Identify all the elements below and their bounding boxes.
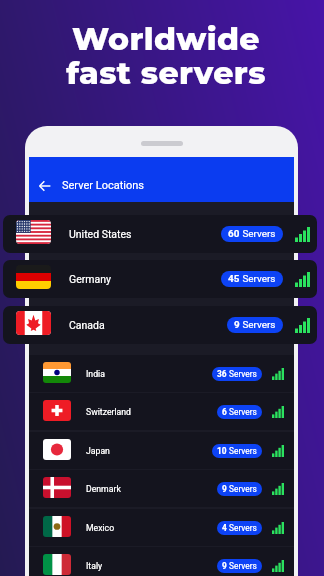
button[interactable]: 36 [212, 367, 262, 381]
staticText: Servers [240, 319, 276, 331]
staticText: Denmark [86, 484, 121, 494]
staticText: 45 [228, 273, 240, 285]
staticText: 9 [234, 319, 240, 331]
staticText: Servers [227, 407, 257, 417]
button[interactable]: Back [34, 175, 56, 197]
button[interactable]: Italy [29, 547, 294, 576]
staticText: Germany [69, 273, 111, 285]
button[interactable]: Denmark [29, 470, 294, 507]
staticText: Servers [227, 446, 257, 456]
button[interactable]: Germany [3, 260, 317, 298]
staticText: Servers [227, 369, 257, 379]
button[interactable]: India [29, 355, 294, 392]
button[interactable]: Japan [29, 432, 294, 469]
staticText: Italy [86, 561, 103, 571]
button[interactable]: 4 [217, 521, 262, 535]
button[interactable]: Switzerland [29, 393, 294, 430]
staticText: 9 [222, 484, 227, 494]
staticText: Worldwide fast servers [66, 20, 266, 92]
staticText: Japan [86, 446, 110, 456]
staticText: Servers [240, 273, 276, 285]
staticText: Servers [227, 561, 257, 571]
staticText: Mexico [86, 523, 115, 533]
button[interactable]: 10 [212, 444, 262, 458]
staticText: 6 [222, 407, 227, 417]
button[interactable]: 60 [221, 226, 283, 242]
staticText: 4 [222, 523, 227, 533]
button[interactable]: United States [3, 215, 317, 253]
staticText: 36 [217, 369, 227, 379]
staticText: Canada [69, 319, 105, 331]
button[interactable]: 9 [227, 317, 283, 333]
button[interactable]: Mexico [29, 509, 294, 546]
button[interactable]: 9 [217, 482, 262, 496]
staticText: Servers [240, 228, 276, 240]
staticText: Server Locations [62, 179, 144, 192]
staticText: 60 [228, 228, 240, 240]
button[interactable]: 6 [217, 405, 262, 419]
staticText: United States [69, 228, 132, 240]
button[interactable]: Canada [3, 306, 317, 344]
staticText: 9 [222, 561, 227, 571]
staticText: Servers [227, 523, 257, 533]
button[interactable]: 45 [221, 271, 283, 287]
staticText: India [86, 369, 105, 379]
staticText: Servers [227, 484, 257, 494]
staticText: Switzerland [86, 407, 131, 417]
button[interactable]: 9 [217, 559, 262, 573]
staticText: 10 [217, 446, 227, 456]
